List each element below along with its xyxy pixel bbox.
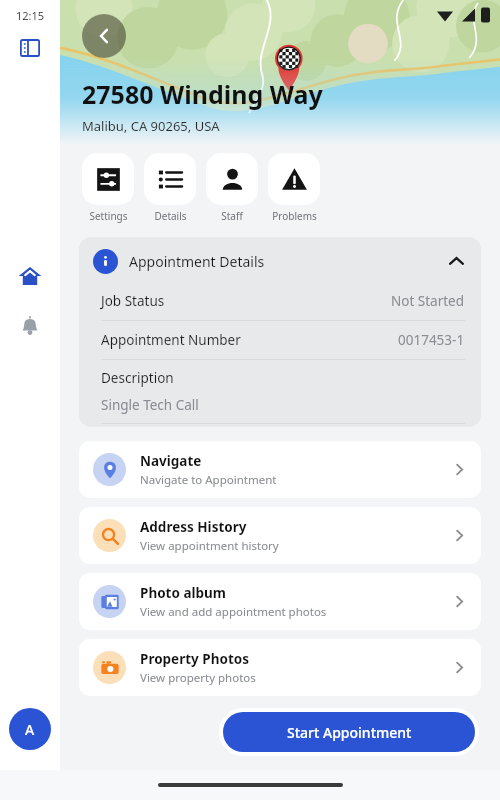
button[interactable]: Property Photos bbox=[79, 639, 481, 696]
staticText: 12:15 bbox=[16, 8, 45, 23]
button[interactable]: Problems bbox=[268, 153, 320, 223]
button[interactable]: Appointment Details bbox=[79, 237, 481, 282]
button[interactable]: Notifications bbox=[8, 304, 52, 348]
staticText: View and add appointment photos bbox=[140, 604, 327, 620]
staticText: Not Started bbox=[391, 292, 465, 310]
staticText: View property photos bbox=[140, 670, 256, 686]
button[interactable]: Details bbox=[144, 153, 196, 223]
staticText: Problems bbox=[272, 209, 317, 223]
staticText: Start Appointment bbox=[287, 723, 412, 742]
staticText: A bbox=[25, 720, 35, 739]
button[interactable]: Photo album bbox=[79, 573, 481, 630]
button[interactable]: A bbox=[9, 708, 51, 750]
button[interactable]: Toggle side panel bbox=[13, 31, 47, 65]
staticText: Staff bbox=[221, 209, 243, 223]
staticText: Property Photos bbox=[140, 650, 249, 668]
staticText: Description bbox=[101, 369, 174, 387]
button[interactable]: Staff bbox=[206, 153, 258, 223]
button[interactable]: Settings bbox=[82, 153, 134, 223]
staticText: Address History bbox=[140, 518, 247, 536]
staticText: Settings bbox=[89, 209, 128, 223]
button[interactable]: Home bbox=[8, 254, 52, 298]
staticText: Navigate bbox=[140, 452, 202, 470]
button[interactable]: Start Appointment bbox=[223, 712, 475, 752]
staticText: Details bbox=[154, 209, 187, 223]
staticText: Job Status bbox=[101, 292, 165, 310]
staticText: Photo album bbox=[140, 584, 226, 602]
staticText: Appointment Details bbox=[129, 252, 265, 271]
staticText: 27580 Winding Way bbox=[82, 77, 323, 111]
staticText: 0017453-1 bbox=[398, 331, 465, 349]
button[interactable]: Address History bbox=[79, 507, 481, 564]
button[interactable]: Back bbox=[82, 14, 126, 58]
staticText: Malibu, CA 90265, USA bbox=[82, 117, 220, 135]
staticText: Navigate to Appointment bbox=[140, 472, 277, 488]
button[interactable]: Navigate bbox=[79, 441, 481, 498]
staticText: Single Tech Call bbox=[101, 396, 199, 414]
staticText: View appointment history bbox=[140, 538, 279, 554]
staticText: Appointment Number bbox=[101, 331, 241, 349]
